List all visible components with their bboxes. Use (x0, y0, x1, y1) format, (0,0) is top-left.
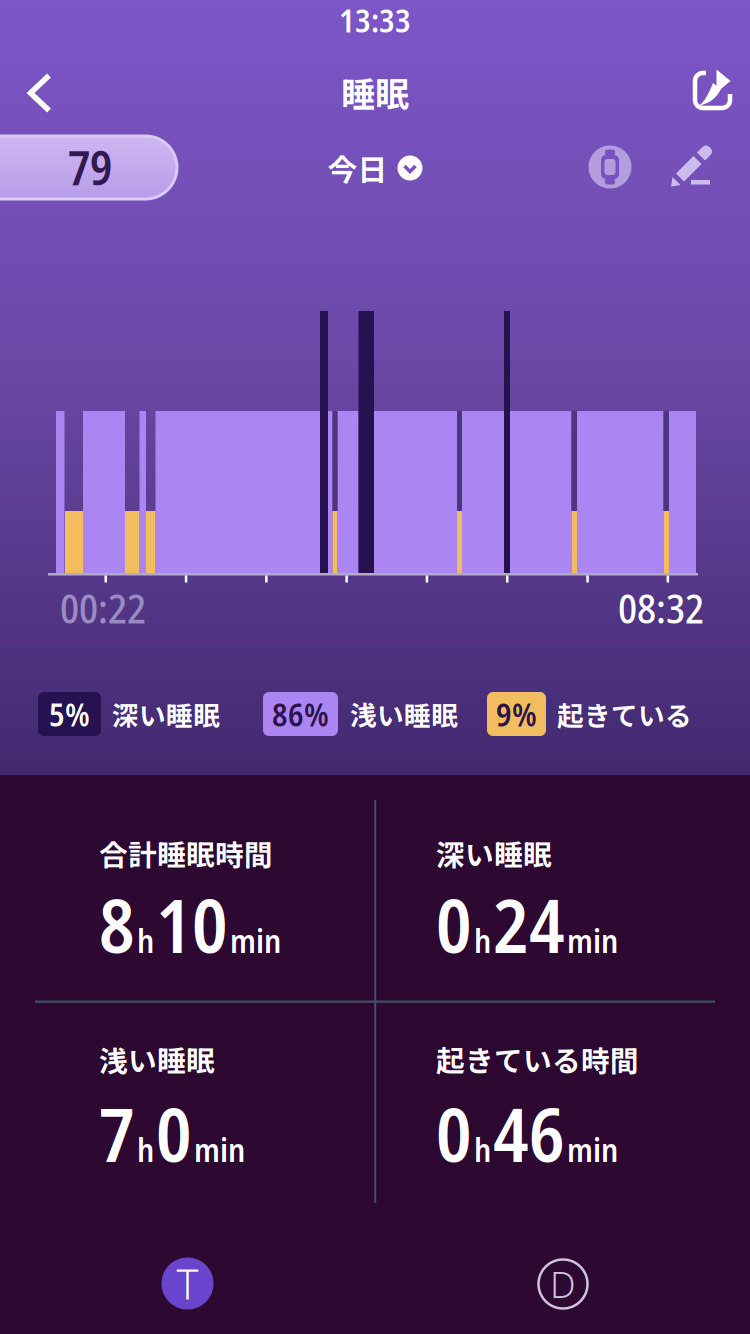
staticText: 00:22 (60, 581, 146, 635)
staticText: 深い睡眠 (112, 695, 220, 733)
staticText: 79 (68, 136, 112, 199)
staticText: 0 (436, 875, 472, 974)
staticText: 5% (49, 692, 90, 736)
staticText: 起きている時間 (436, 1038, 639, 1080)
button[interactable]: Sleep score 79 (0, 136, 177, 199)
staticText: 10 (156, 875, 228, 974)
staticText: min (567, 1127, 618, 1171)
button[interactable]: Day view (161, 1257, 213, 1309)
button[interactable]: Details view (538, 1259, 587, 1308)
staticText: 24 (493, 875, 565, 974)
staticText: h (474, 1127, 491, 1171)
staticText: 深い睡眠 (436, 832, 552, 874)
staticText: T (176, 1256, 198, 1311)
button[interactable]: Share (0, 0, 750, 1334)
staticText: 08:32 (618, 581, 704, 635)
staticText: 起きている (557, 695, 692, 733)
staticText: 浅い睡眠 (350, 695, 458, 733)
staticText: h (474, 918, 491, 962)
staticText: 睡眠 (341, 67, 409, 117)
button[interactable]: Back (13, 65, 69, 121)
staticText: 浅い睡眠 (99, 1038, 215, 1080)
staticText: h (137, 918, 154, 962)
staticText: 合計睡眠時間 (99, 832, 273, 874)
staticText: h (137, 1127, 154, 1171)
staticText: 8 (99, 875, 135, 974)
staticText: min (194, 1127, 245, 1171)
staticText: 0 (156, 1084, 192, 1183)
staticText: 9% (496, 692, 537, 736)
staticText: 13:33 (339, 0, 411, 42)
button[interactable]: Select day: today (327, 146, 422, 190)
button[interactable]: Edit (0, 0, 750, 1334)
staticText: 86% (272, 692, 329, 736)
staticText: min (230, 918, 281, 962)
staticText: 今日 (327, 146, 387, 190)
staticText: D (550, 1260, 576, 1308)
staticText: min (567, 918, 618, 962)
button[interactable]: Watch (588, 145, 631, 188)
staticText: 46 (493, 1084, 565, 1183)
staticText: 0 (436, 1084, 472, 1183)
staticText: 7 (99, 1084, 135, 1183)
